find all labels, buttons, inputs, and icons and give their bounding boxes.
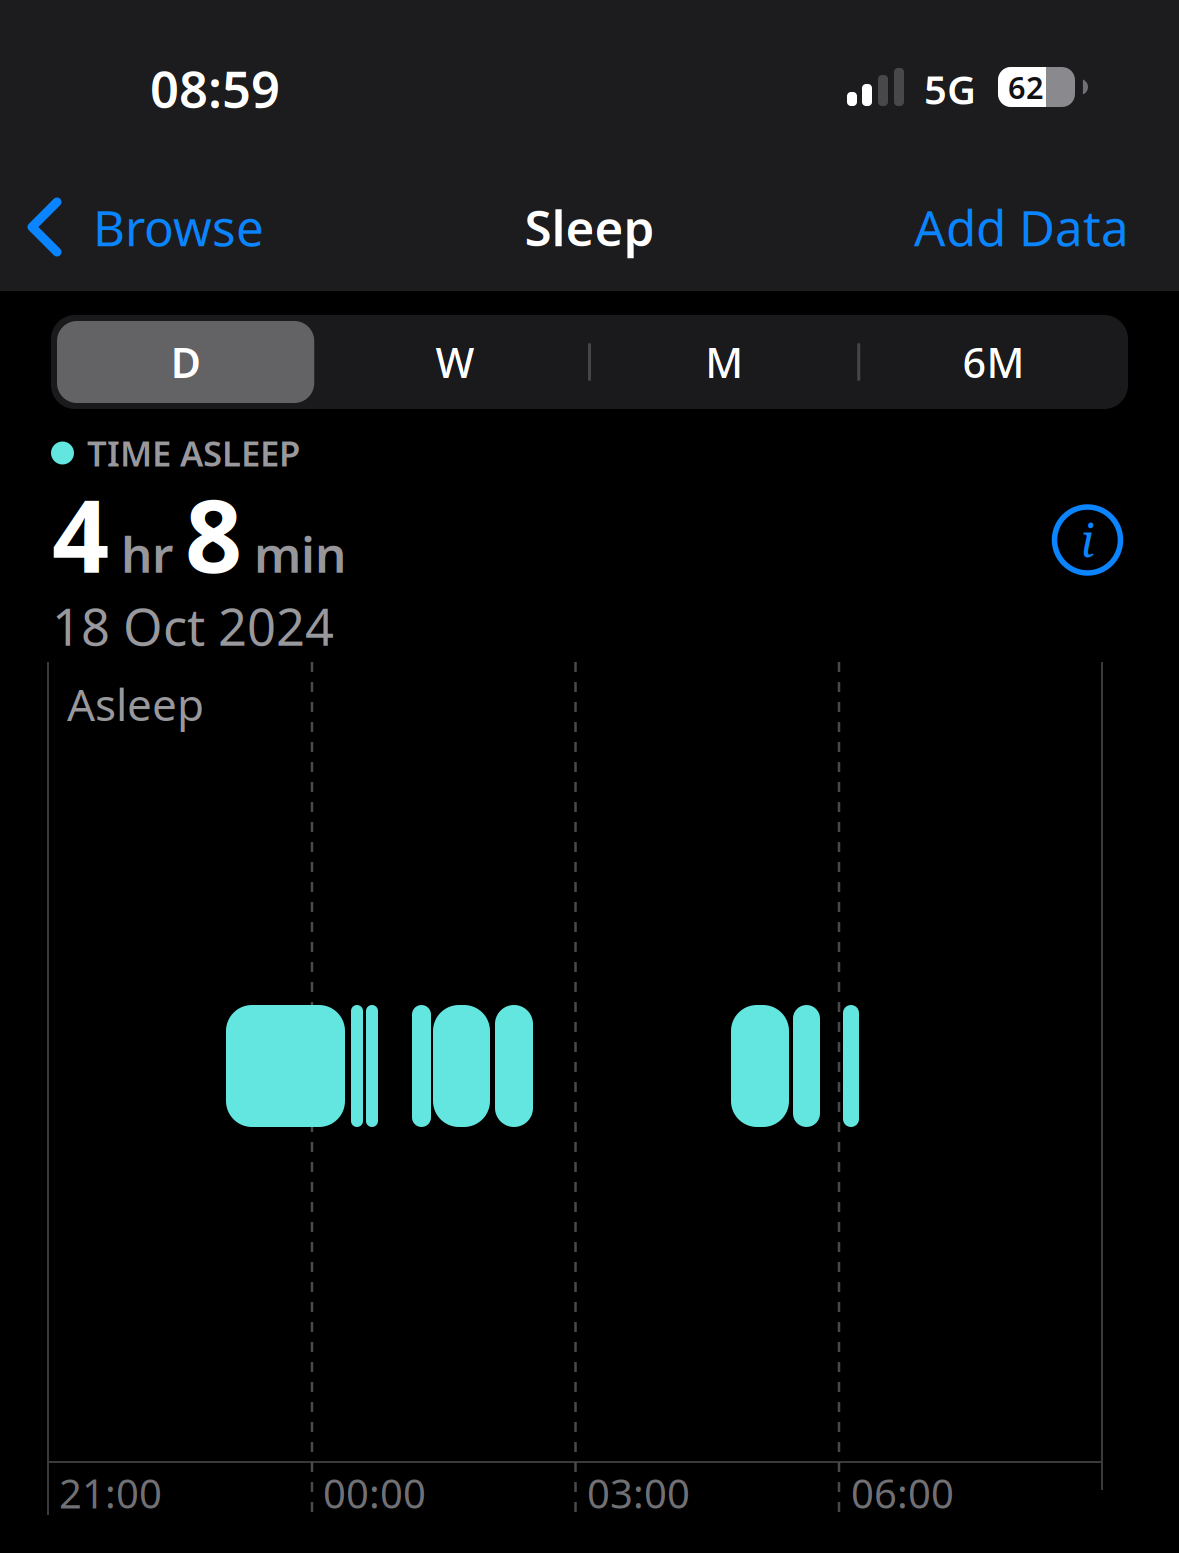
button[interactable]: M xyxy=(589,315,859,409)
staticText: 8 xyxy=(185,468,242,600)
staticText: M xyxy=(705,335,743,389)
staticText: 4 xyxy=(52,468,109,600)
staticText: W xyxy=(435,335,474,389)
staticText: D xyxy=(171,335,201,389)
button[interactable]: 6M xyxy=(859,315,1128,409)
staticText: Sleep xyxy=(524,194,654,260)
staticText: hr xyxy=(121,521,173,586)
staticText: 08:59 xyxy=(150,54,280,122)
staticText: 5G xyxy=(924,62,976,115)
staticText: TIME ASLEEP xyxy=(87,430,300,476)
button[interactable]: W xyxy=(320,315,589,409)
staticText: 06:00 xyxy=(851,1466,954,1519)
staticText: Browse xyxy=(93,194,264,260)
staticText: 6M xyxy=(962,335,1024,389)
button[interactable]: D xyxy=(51,315,320,409)
button[interactable]: Back to Browse xyxy=(29,187,264,267)
staticText: 62 xyxy=(1008,67,1044,107)
staticText: 18 Oct 2024 xyxy=(52,592,334,660)
staticText: 21:00 xyxy=(59,1466,162,1519)
staticText: 03:00 xyxy=(587,1466,690,1519)
staticText: min xyxy=(254,521,346,586)
staticText: Add Data xyxy=(914,194,1129,260)
button[interactable]: Add Data xyxy=(914,187,1129,267)
staticText: i xyxy=(1080,509,1094,571)
button[interactable]: More information xyxy=(1051,504,1123,576)
staticText: Asleep xyxy=(67,675,204,733)
staticText: 00:00 xyxy=(323,1466,426,1519)
